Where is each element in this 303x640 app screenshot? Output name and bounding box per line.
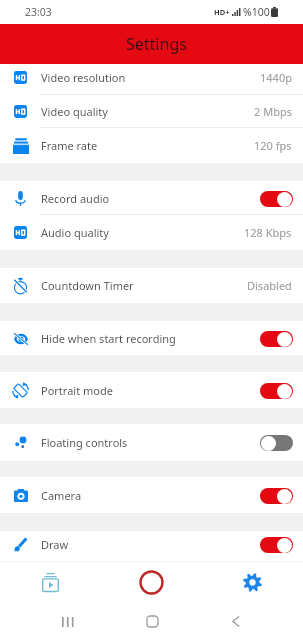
button[interactable]: Floating controls xyxy=(0,424,303,461)
button[interactable]: Portrait mode xyxy=(0,372,303,408)
button[interactable]: Audio quality xyxy=(0,215,303,250)
button[interactable]: Video quality xyxy=(0,95,303,128)
staticText: 1440p xyxy=(260,70,292,85)
button[interactable]: Hide when start recording xyxy=(0,321,303,355)
button[interactable]: Back xyxy=(194,603,278,640)
staticText: Settings xyxy=(126,33,187,55)
staticText: Frame rate xyxy=(41,138,98,153)
button[interactable]: Frame rate xyxy=(0,128,303,163)
staticText: Camera xyxy=(41,488,82,503)
button[interactable] xyxy=(260,435,293,451)
button[interactable]: Video resolution xyxy=(0,64,303,95)
button[interactable]: Camera xyxy=(0,477,303,513)
staticText: Draw xyxy=(41,537,69,552)
staticText: Video quality xyxy=(41,104,108,119)
staticText: Audio quality xyxy=(41,225,109,240)
staticText: Portrait mode xyxy=(41,383,113,398)
button[interactable] xyxy=(260,537,293,553)
staticText: Video resolution xyxy=(41,70,126,85)
button[interactable]: Settings xyxy=(202,562,303,603)
button[interactable]: Recents xyxy=(26,603,110,640)
button[interactable]: Draw xyxy=(0,531,303,557)
button[interactable] xyxy=(260,191,293,207)
staticText: Floating controls xyxy=(41,435,128,450)
button[interactable]: Countdown Timer xyxy=(0,268,303,303)
button[interactable]: Record xyxy=(101,562,202,603)
button[interactable]: Record audio xyxy=(0,181,303,215)
staticText: 128 Kbps xyxy=(244,225,292,240)
staticText: Countdown Timer xyxy=(41,278,134,293)
staticText: Hide when start recording xyxy=(41,331,176,346)
button[interactable]: Videos xyxy=(0,562,101,603)
staticText: Record audio xyxy=(41,191,110,206)
staticText: 120 fps xyxy=(254,138,292,153)
button[interactable] xyxy=(260,488,293,504)
button[interactable]: Home xyxy=(110,603,194,640)
staticText: Disabled xyxy=(247,278,292,293)
staticText: 23:03 xyxy=(25,5,52,19)
staticText: %100 xyxy=(243,5,270,19)
button[interactable] xyxy=(260,331,293,347)
staticText: HD+ xyxy=(214,7,230,17)
staticText: 2 Mbps xyxy=(254,104,292,119)
button[interactable] xyxy=(260,383,293,399)
